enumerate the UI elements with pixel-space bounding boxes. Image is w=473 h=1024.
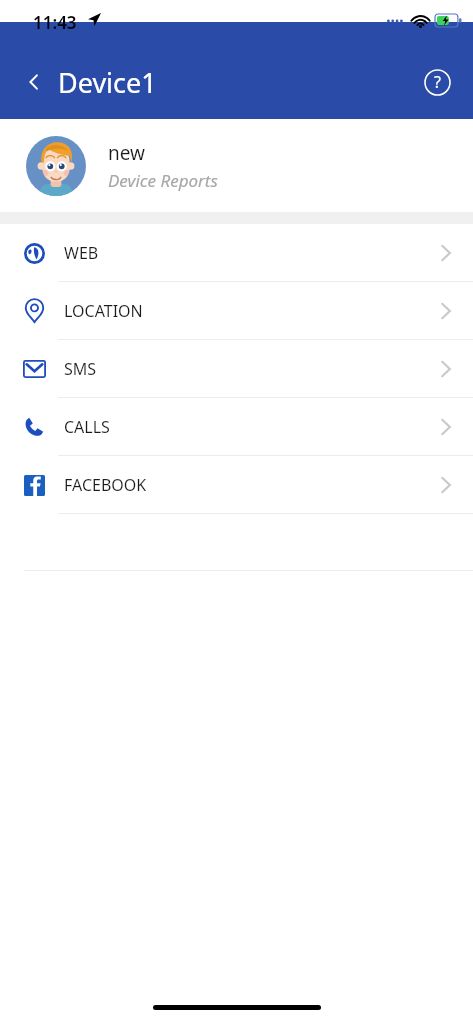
staticText: FACEBOOK: [64, 474, 147, 496]
button[interactable]: CALLS: [0, 398, 473, 455]
staticText: new: [108, 140, 146, 166]
button[interactable]: Back: [14, 62, 54, 102]
button[interactable]: FACEBOOK: [0, 456, 473, 513]
staticText: SMS: [64, 358, 97, 380]
staticText: LOCATION: [64, 300, 143, 322]
button[interactable]: LOCATION: [0, 282, 473, 339]
staticText: Device1: [58, 64, 157, 101]
staticText: WEB: [64, 242, 99, 264]
staticText: Device Reports: [108, 169, 218, 192]
button[interactable]: WEB: [0, 224, 473, 281]
staticText: CALLS: [64, 416, 110, 438]
button[interactable]: Help: [415, 60, 459, 104]
button[interactable]: SMS: [0, 340, 473, 397]
staticText: 11:43: [33, 11, 77, 34]
button[interactable]: new: [0, 119, 473, 212]
staticText: ?: [434, 71, 441, 93]
